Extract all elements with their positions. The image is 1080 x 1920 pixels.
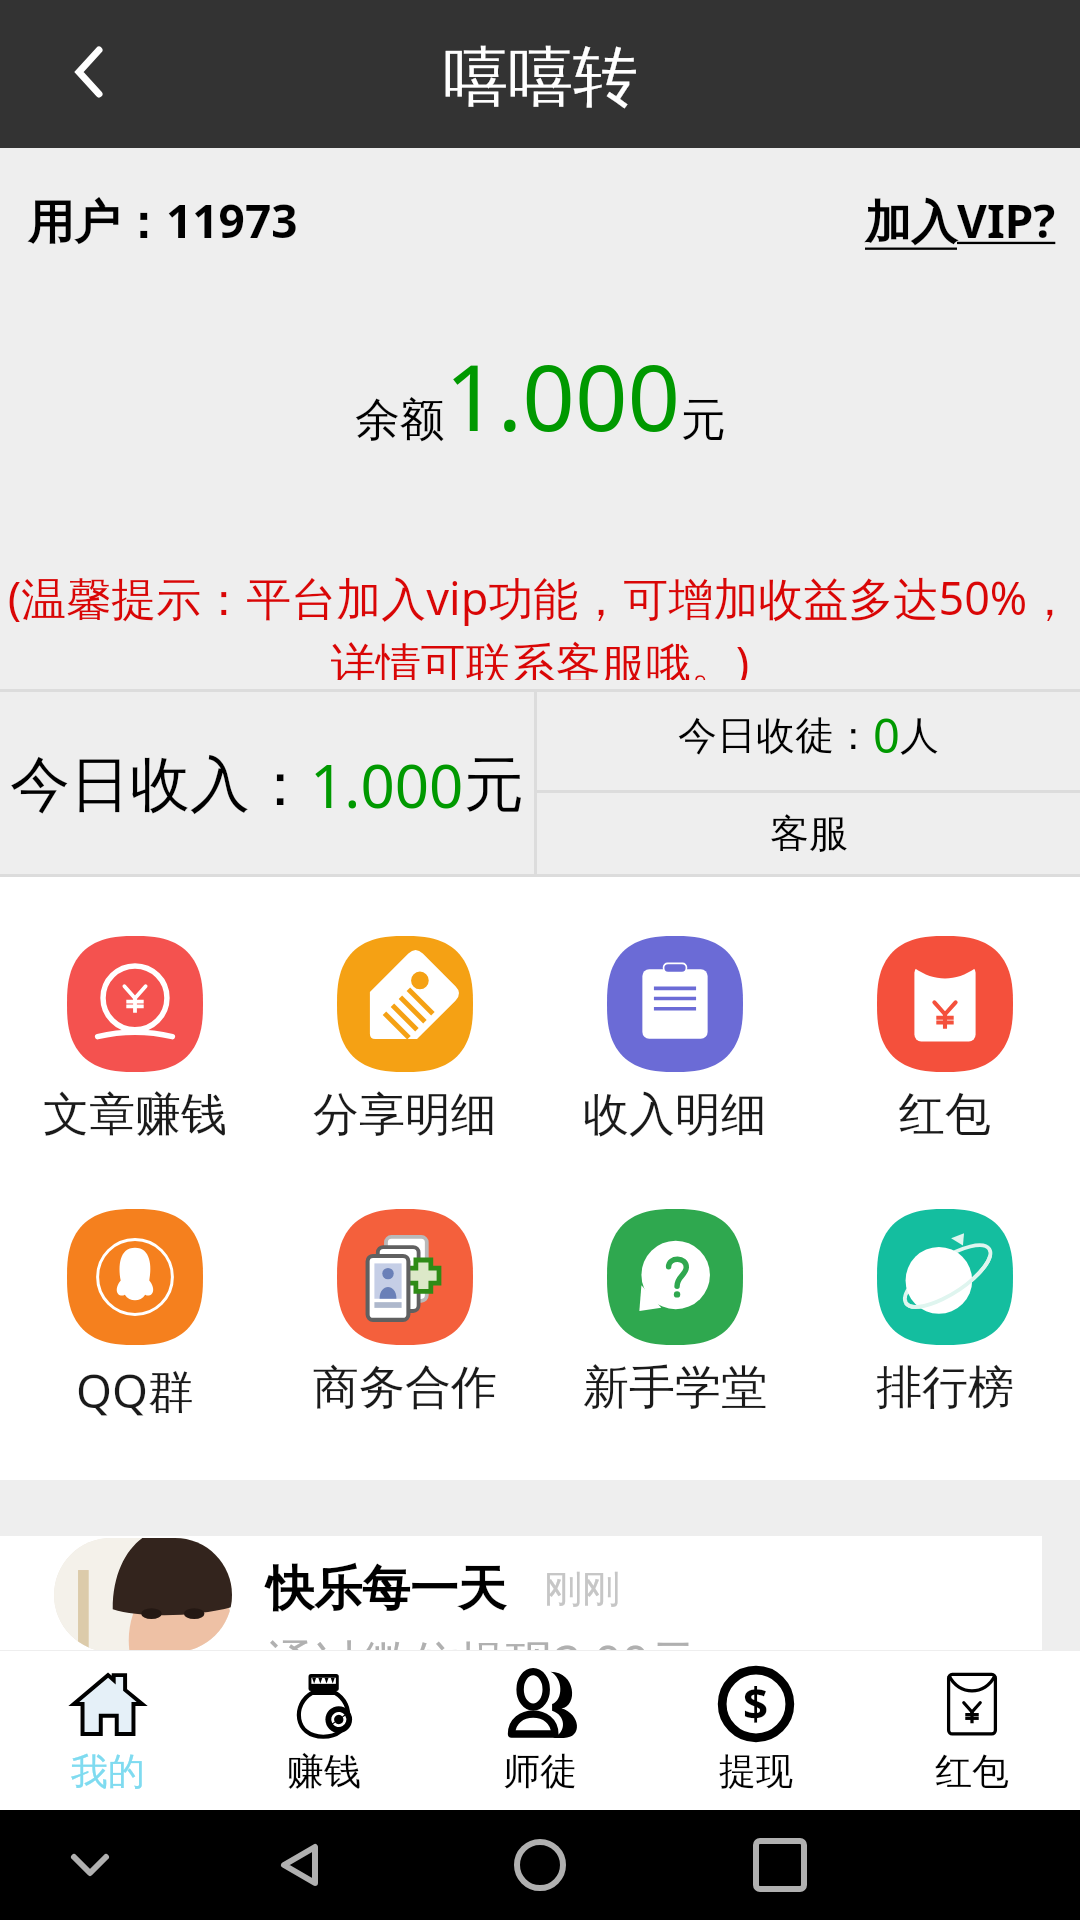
staticText: 1.000	[445, 333, 681, 458]
button[interactable]: Back	[0, 0, 178, 148]
staticText: 赚钱	[287, 1748, 361, 1795]
staticText: 加入VIP?	[865, 189, 1056, 252]
staticText: 1.000	[310, 744, 464, 826]
button[interactable]: 客服	[537, 793, 1080, 874]
button[interactable]: 我的	[0, 1651, 216, 1810]
staticText: (温馨提示：平台加入vip功能，可增加收益多达50%，详情可联系客服哦。)	[2, 567, 1078, 680]
staticText: 用户：11973	[28, 189, 298, 252]
staticText: 分享明细	[313, 1086, 497, 1144]
button[interactable]: Hide keyboard	[45, 1820, 135, 1910]
staticText: 红包	[935, 1748, 1009, 1795]
staticText: 嘻嘻转	[443, 36, 638, 118]
staticText: QQ群	[76, 1359, 194, 1422]
button[interactable]: 师徒	[432, 1651, 648, 1810]
button[interactable]: 商务合作	[270, 1209, 540, 1417]
button[interactable]: Back	[255, 1820, 345, 1910]
staticText: 收入明细	[583, 1086, 767, 1144]
button[interactable]: Home	[495, 1820, 585, 1910]
button[interactable]: 排行榜	[810, 1209, 1080, 1417]
button[interactable]: 新手学堂	[540, 1209, 810, 1417]
staticText: 新手学堂	[583, 1359, 767, 1417]
staticText: 元	[464, 747, 524, 823]
button[interactable]: QQ群	[0, 1209, 270, 1422]
staticText: 商务合作	[313, 1359, 497, 1417]
staticText: 快乐每一天	[266, 1559, 506, 1619]
staticText: 元	[681, 392, 726, 449]
button[interactable]: 快乐每一天	[0, 1536, 1042, 1650]
button[interactable]: 赚钱	[216, 1651, 432, 1810]
button[interactable]: 分享明细	[270, 936, 540, 1144]
staticText: 我的	[71, 1748, 145, 1795]
staticText: $	[743, 1673, 769, 1733]
button[interactable]: $	[648, 1651, 864, 1810]
button[interactable]: 加入VIP?	[865, 189, 1080, 252]
staticText: 刚刚	[544, 1565, 620, 1613]
staticText: 通过微信提现2.00元	[266, 1629, 698, 1650]
button[interactable]: Recent apps	[735, 1820, 825, 1910]
staticText: 人	[900, 711, 939, 760]
button[interactable]: 今日收入：	[0, 692, 534, 874]
staticText: 师徒	[503, 1748, 577, 1795]
staticText: 今日收入：	[10, 747, 310, 823]
staticText: 排行榜	[876, 1359, 1014, 1417]
staticText: 客服	[770, 809, 848, 858]
button[interactable]: 文章赚钱	[0, 936, 270, 1144]
staticText: 0	[873, 703, 900, 767]
staticText: 红包	[899, 1086, 991, 1144]
staticText: 提现	[719, 1748, 793, 1795]
staticText: 今日收徒：	[678, 711, 873, 760]
staticText: 文章赚钱	[43, 1086, 227, 1144]
staticText: 余额	[355, 392, 445, 449]
button[interactable]: 红包	[864, 1651, 1080, 1810]
button[interactable]: 收入明细	[540, 936, 810, 1144]
button[interactable]: 红包	[810, 936, 1080, 1144]
